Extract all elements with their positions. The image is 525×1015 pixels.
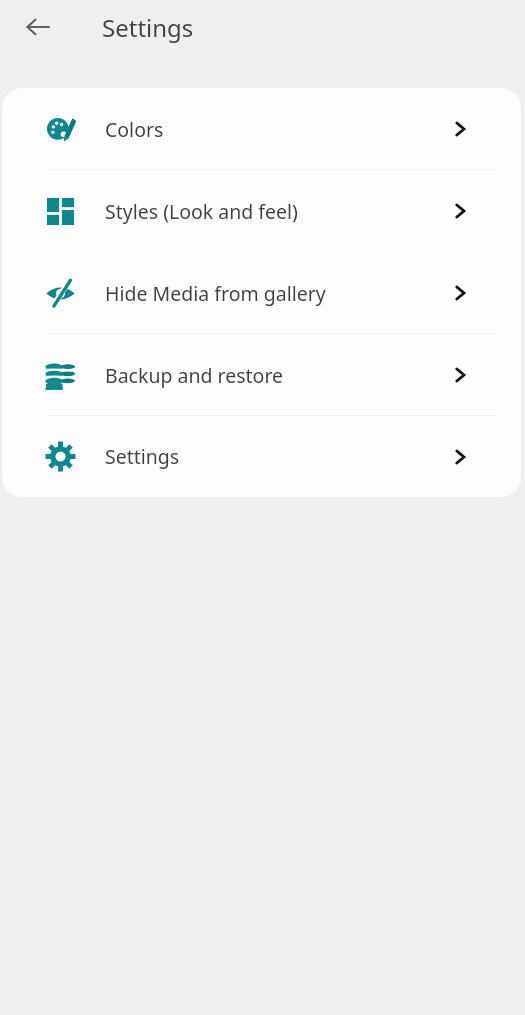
staticText: Settings <box>102 11 194 44</box>
button[interactable]: Back <box>14 3 62 51</box>
button[interactable]: Settings <box>2 416 521 497</box>
staticText: Colors <box>105 116 164 143</box>
button[interactable]: Colors <box>2 88 521 170</box>
staticText: Styles (Look and feel) <box>105 198 298 225</box>
button[interactable]: Hide Media from gallery <box>2 252 521 334</box>
button[interactable]: Backup and restore <box>2 334 521 416</box>
button[interactable]: Styles (Look and feel) <box>2 170 521 252</box>
staticText: Hide Media from gallery <box>105 280 326 307</box>
staticText: Settings <box>105 443 180 470</box>
staticText: Backup and restore <box>105 362 284 389</box>
